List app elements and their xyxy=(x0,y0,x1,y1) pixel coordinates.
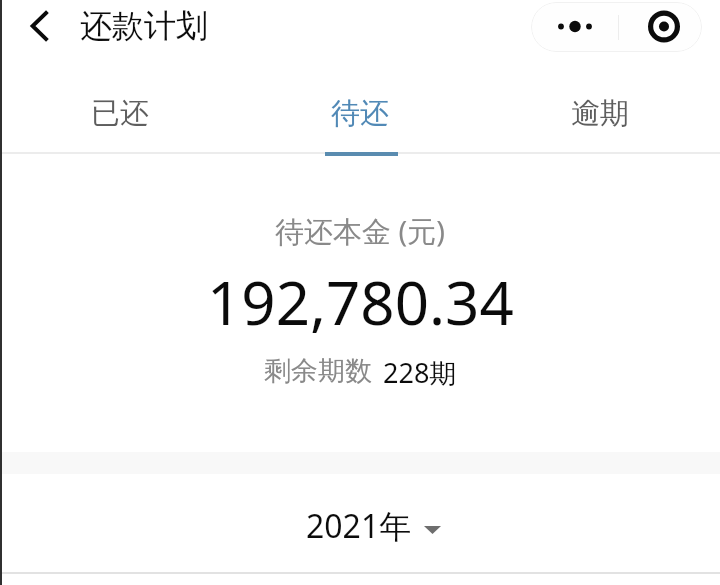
staticText: 2021年 xyxy=(306,504,412,548)
button[interactable]: 待还 xyxy=(240,56,480,154)
button[interactable]: Back xyxy=(16,5,62,51)
staticText: 228期 xyxy=(383,354,457,391)
button[interactable]: More options xyxy=(531,2,617,52)
staticText: 待还本金 (元) xyxy=(275,211,445,251)
staticText: 已还 xyxy=(91,95,149,132)
staticText: 待还 xyxy=(331,95,389,132)
staticText: 剩余期数 xyxy=(264,354,372,388)
button[interactable]: 逾期 xyxy=(480,56,720,154)
staticText: 192,780.34 xyxy=(207,261,514,343)
button[interactable]: 已还 xyxy=(0,56,240,154)
button[interactable]: 2021年 xyxy=(0,474,720,572)
button[interactable]: Close mini program xyxy=(617,2,702,52)
staticText: 逾期 xyxy=(571,95,629,132)
staticText: 还款计划 xyxy=(80,6,208,46)
